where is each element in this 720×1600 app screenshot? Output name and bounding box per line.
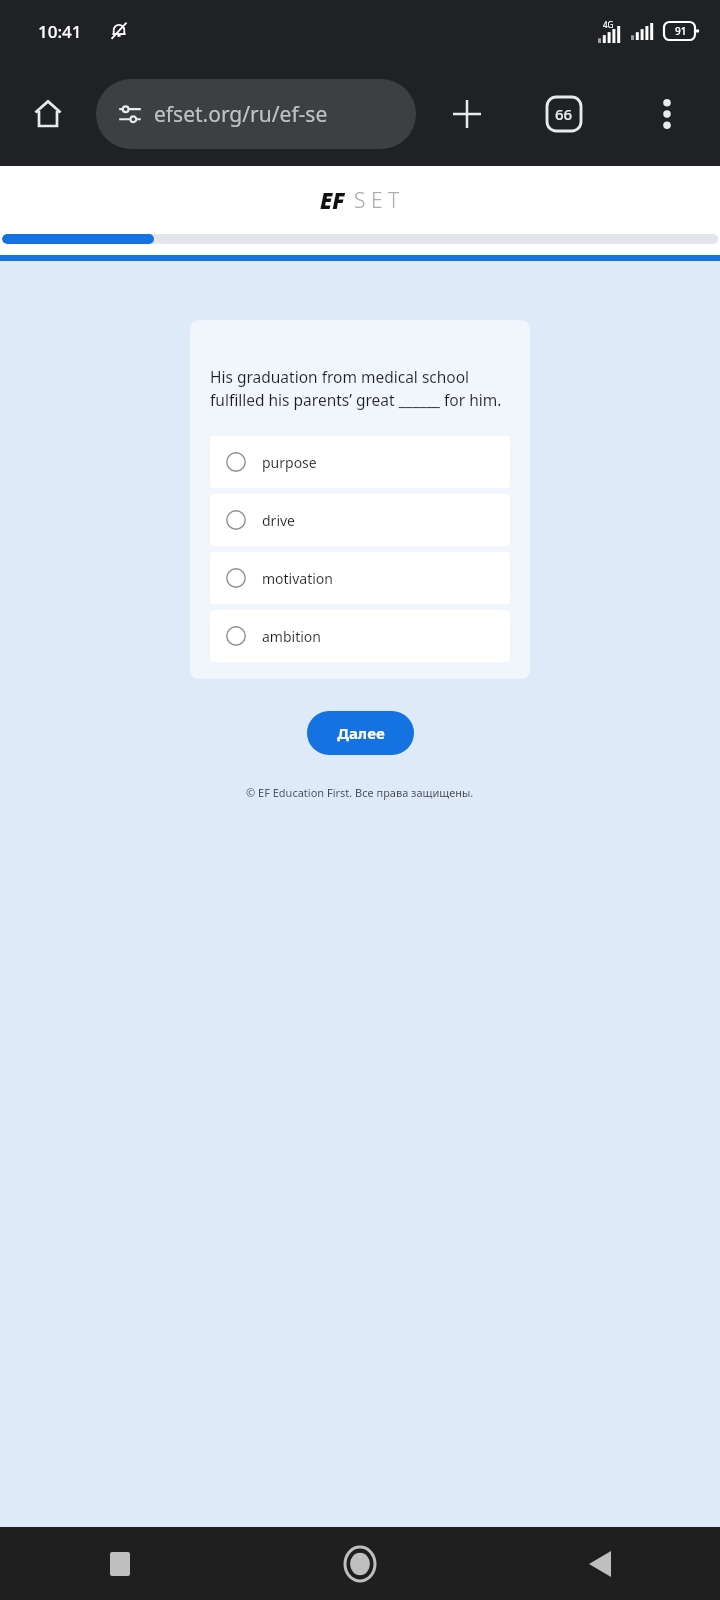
staticText: purpose (262, 453, 317, 472)
staticText: 4G (603, 19, 614, 30)
button[interactable]: More options (642, 89, 692, 139)
button[interactable]: Далее (307, 711, 414, 755)
button[interactable]: drive (210, 494, 510, 546)
staticText: ambition (262, 627, 321, 646)
button[interactable]: Home (240, 1527, 480, 1600)
staticText: drive (262, 511, 296, 530)
staticText: Далее (337, 723, 385, 743)
button[interactable]: efset.org/ru/ef-se (96, 79, 416, 149)
button[interactable]: ambition (210, 610, 510, 662)
button[interactable]: New tab (440, 87, 494, 141)
staticText: His graduation from medical school fulfi… (210, 366, 502, 411)
button[interactable]: purpose (210, 436, 510, 488)
staticText: EF (320, 185, 345, 215)
staticText: efset.org/ru/ef-se (154, 100, 328, 129)
staticText: S E T (354, 186, 400, 215)
staticText: 91 (675, 24, 687, 38)
staticText: 10:41 (38, 20, 82, 43)
button[interactable]: Back (480, 1527, 720, 1600)
button[interactable]: Recent apps (0, 1527, 240, 1600)
button[interactable]: Home (22, 88, 74, 140)
staticText: motivation (262, 569, 333, 588)
button[interactable]: Tabs, 66 open (537, 87, 591, 141)
staticText: © EF Education First. Все права защищены… (246, 785, 474, 800)
staticText: 66 (555, 104, 573, 124)
button[interactable]: motivation (210, 552, 510, 604)
